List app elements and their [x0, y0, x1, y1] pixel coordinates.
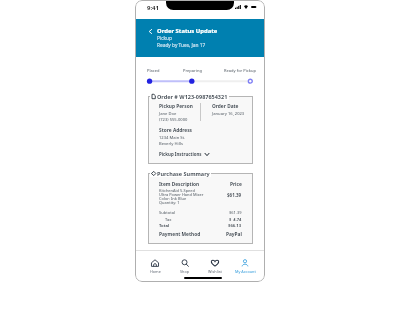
- staticText: Tax: [165, 217, 172, 222]
- staticText: Purchase Summary: [157, 170, 210, 177]
- staticText: $ 4.74: [229, 217, 242, 222]
- staticText: Placed: [147, 68, 160, 73]
- staticText: $66.13: [228, 223, 242, 229]
- staticText: Wishlist: [208, 269, 222, 274]
- staticText: Shop: [180, 269, 190, 274]
- button[interactable]: Pickup Instructions: [159, 151, 209, 157]
- staticText: $61.39: [229, 210, 242, 215]
- staticText: Item Description: [159, 181, 200, 188]
- staticText: $61.39: [227, 192, 242, 198]
- button[interactable]: Back: [147, 28, 153, 34]
- staticText: 1234 Main St.: [159, 135, 186, 141]
- staticText: (723) 555-0000: [159, 117, 188, 123]
- button[interactable]: Home: [140, 251, 170, 274]
- staticText: Ready by Tues, Jan 17: [157, 42, 206, 49]
- staticText: Subtotal: [159, 210, 176, 215]
- staticText: Beverly Hills: [159, 141, 183, 147]
- staticText: Home: [150, 269, 161, 274]
- staticText: Total: [159, 223, 170, 229]
- staticText: Order # W123-0987654321: [157, 93, 228, 100]
- button[interactable]: Wishlist: [200, 251, 230, 274]
- staticText: Pickup Person: [159, 103, 193, 110]
- staticText: KitchenAid 5-Speed Ultra Power Hand Mixe…: [159, 188, 204, 205]
- staticText: Order Date: [212, 103, 239, 110]
- button[interactable]: Shop: [170, 251, 200, 274]
- staticText: Pickup Instructions: [159, 151, 202, 157]
- staticText: Pickup: [157, 35, 172, 42]
- button[interactable]: My Account: [230, 251, 260, 274]
- staticText: Order Status Update: [157, 27, 218, 35]
- staticText: Ready for Pickup: [224, 68, 257, 73]
- staticText: Price: [230, 181, 242, 188]
- staticText: 9:41: [147, 4, 159, 12]
- staticText: PayPal: [226, 231, 242, 238]
- staticText: My Account: [235, 269, 256, 274]
- staticText: January 16, 2023: [212, 111, 245, 117]
- staticText: Jane Doe: [159, 111, 177, 117]
- staticText: Payment Method: [159, 231, 201, 238]
- staticText: Store Address: [159, 127, 192, 134]
- staticText: Preparing: [183, 68, 202, 73]
